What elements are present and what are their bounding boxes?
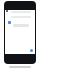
button[interactable]: Item (8, 21, 11, 24)
button[interactable]: Compose (30, 49, 33, 52)
button[interactable] (13, 24, 29, 27)
